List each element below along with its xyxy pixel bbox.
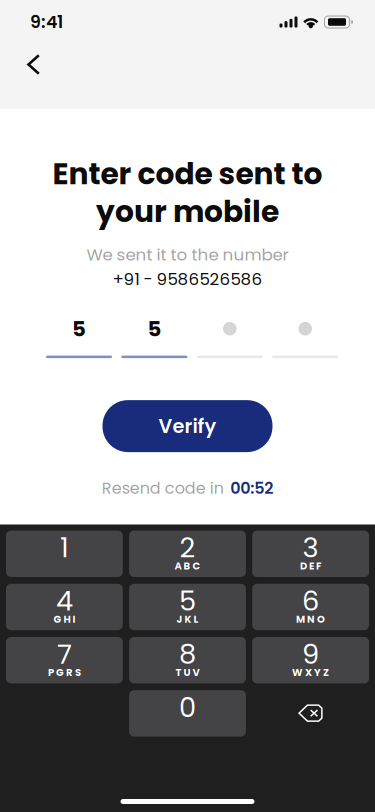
button[interactable]: Verify: [102, 400, 272, 452]
staticText: 5: [147, 314, 161, 344]
staticText: 6: [302, 582, 319, 620]
staticText: J K L: [176, 612, 198, 626]
staticText: 5: [72, 314, 86, 344]
staticText: 9:41: [30, 10, 63, 34]
staticText: We sent it to the number: [86, 243, 288, 266]
staticText: 00:52: [230, 477, 273, 499]
staticText: 5: [179, 582, 196, 620]
button[interactable]: 00:52: [230, 477, 273, 499]
staticText: T U V: [175, 665, 199, 679]
button[interactable]: Delete: [252, 690, 369, 737]
button[interactable]: 8: [129, 637, 246, 683]
staticText: Enter code sent to: [52, 153, 322, 195]
staticText: 8: [179, 635, 196, 673]
staticText: +91 - 9586526586: [112, 268, 262, 291]
staticText: 3: [303, 529, 319, 567]
staticText: G H I: [53, 612, 75, 626]
staticText: 2: [179, 529, 195, 567]
button[interactable]: 2: [129, 531, 246, 577]
staticText: 9: [302, 635, 319, 673]
button[interactable]: 1: [6, 531, 123, 577]
staticText: 7: [57, 635, 72, 673]
staticText: 4: [56, 582, 73, 620]
staticText: Verify: [158, 413, 216, 440]
button[interactable]: 6: [252, 584, 369, 630]
staticText: your mobile: [96, 191, 279, 232]
button[interactable]: 4: [6, 584, 123, 630]
button[interactable]: 9: [252, 637, 369, 683]
button[interactable]: 0: [129, 690, 246, 737]
button[interactable]: Back: [0, 44, 58, 89]
staticText: 0: [179, 688, 196, 727]
button[interactable]: 5: [129, 584, 246, 630]
staticText: D E F: [300, 559, 321, 573]
staticText: W X Y Z: [292, 665, 329, 679]
staticText: 1: [60, 529, 69, 567]
staticText: Resend code in: [102, 477, 224, 499]
button[interactable]: 3: [252, 531, 369, 577]
staticText: M N O: [296, 612, 325, 626]
button[interactable]: 7: [6, 637, 123, 683]
staticText: P G R S: [48, 665, 81, 679]
staticText: A B C: [174, 559, 200, 573]
